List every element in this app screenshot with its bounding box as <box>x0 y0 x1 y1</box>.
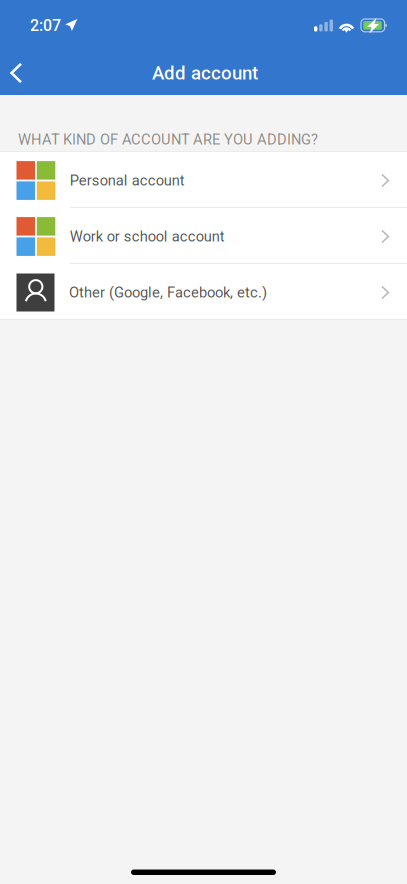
button[interactable]: Back <box>0 48 37 97</box>
staticText: WHAT KIND OF ACCOUNT ARE YOU ADDING? <box>18 131 318 148</box>
staticText: 2:07 <box>30 16 61 35</box>
staticText: Work or school account <box>70 228 225 245</box>
button[interactable]: Other (Google, Facebook, etc.) <box>0 264 407 320</box>
staticText: Add account <box>152 62 258 84</box>
button[interactable]: Personal account <box>0 152 407 208</box>
staticText: Personal account <box>70 172 185 189</box>
button[interactable]: Work or school account <box>0 208 407 264</box>
staticText: Other (Google, Facebook, etc.) <box>69 284 267 301</box>
